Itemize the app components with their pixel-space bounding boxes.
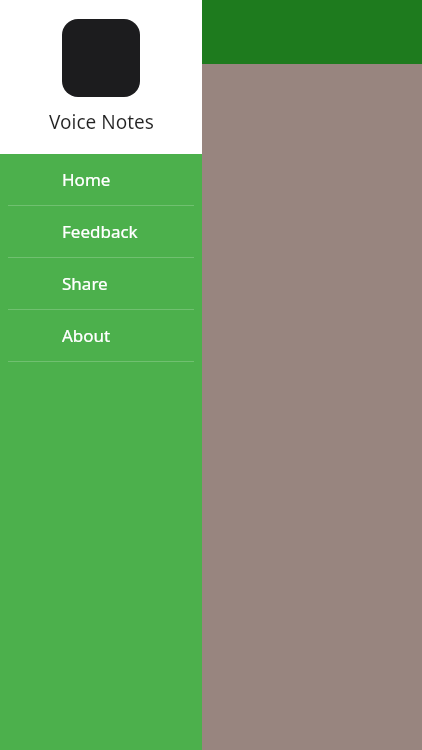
staticText: Home: [62, 168, 111, 191]
staticText: Feedback: [62, 220, 138, 243]
button[interactable]: Feedback: [0, 206, 202, 257]
button[interactable]: About: [0, 310, 202, 361]
staticText: Voice Notes: [49, 109, 154, 135]
staticText: About: [62, 324, 111, 347]
staticText: Share: [62, 272, 108, 295]
staticText: Home: [16, 29, 73, 56]
button[interactable]: Share: [0, 258, 202, 309]
button[interactable]: Home: [0, 154, 202, 205]
